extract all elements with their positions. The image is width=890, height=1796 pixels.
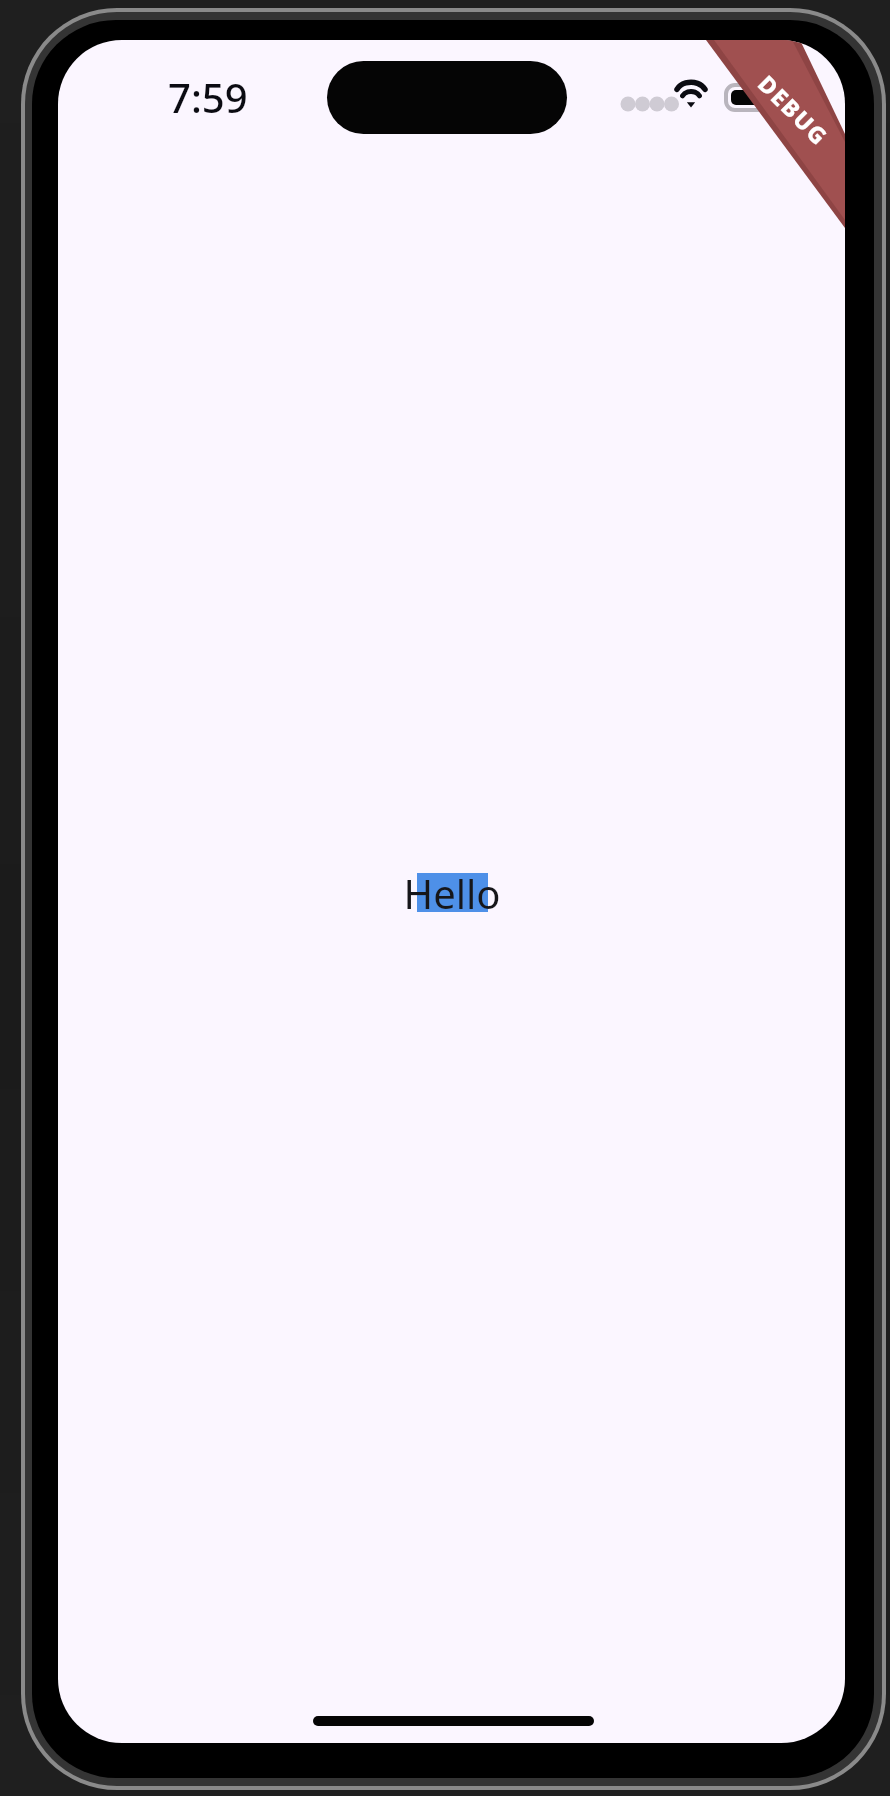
button[interactable]: Hello [417, 873, 488, 912]
